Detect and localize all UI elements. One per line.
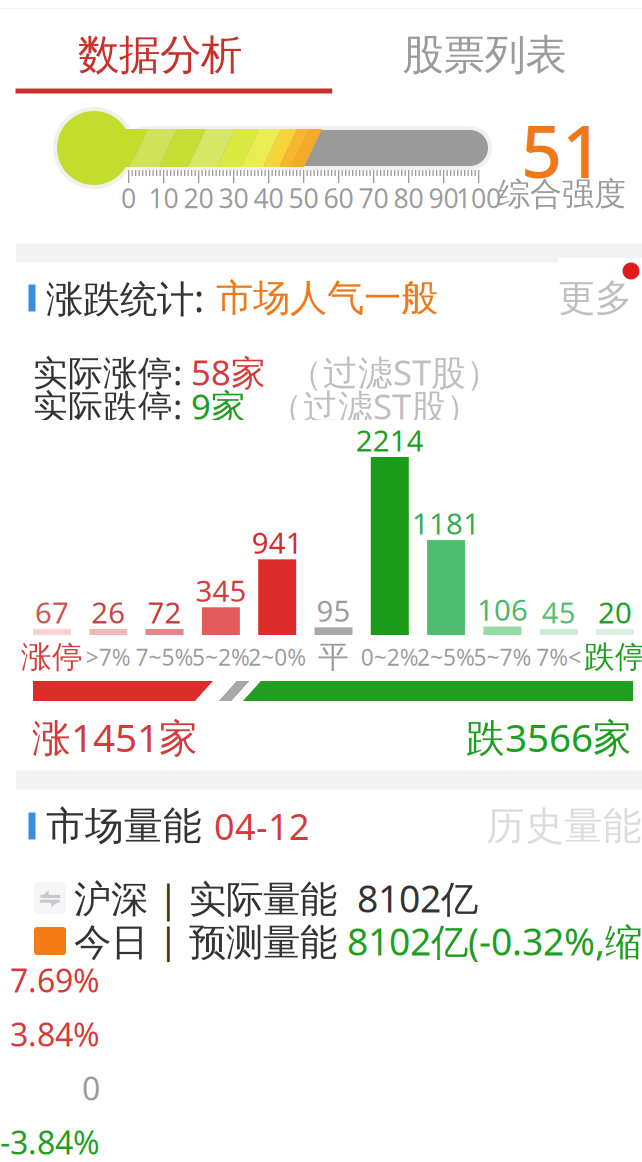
button[interactable]: 数据分析	[0, 9, 333, 95]
staticText: 20	[183, 180, 213, 216]
staticText: 45	[542, 592, 576, 631]
staticText: 2214	[356, 420, 424, 459]
staticText: 平	[318, 638, 349, 676]
staticText: 26	[91, 592, 125, 631]
staticText: 10	[148, 180, 178, 216]
staticText: 2~5%	[417, 642, 475, 672]
staticText: 历史量能	[486, 802, 642, 850]
staticText: 0	[121, 180, 136, 216]
button[interactable]: 更多	[558, 258, 642, 332]
staticText: 5~7%	[473, 642, 531, 672]
staticText: -3.84%	[0, 1121, 100, 1162]
staticText: 40	[253, 180, 283, 216]
staticText: 沪深 | 实际量能 8102亿	[74, 873, 478, 923]
staticText: 67	[35, 592, 69, 631]
staticText: >7%	[86, 642, 131, 672]
staticText: 7%<	[536, 642, 581, 672]
staticText: 数据分析	[78, 30, 242, 80]
staticText: 2~0%	[248, 642, 306, 672]
staticText: 涨1451家	[32, 711, 198, 763]
staticText: 股票列表	[402, 30, 566, 80]
staticText: 8102亿(-0.32%,缩量26亿)	[347, 916, 642, 966]
staticText: 51	[521, 102, 603, 198]
staticText: 3.84%	[10, 1013, 100, 1055]
staticText: 综合强度	[498, 174, 626, 214]
button[interactable]: 历史量能	[502, 796, 642, 856]
staticText: 60	[323, 180, 353, 216]
staticText: 跌停	[584, 638, 642, 676]
staticText: 涨跌统计:	[46, 273, 204, 323]
staticText: 58家	[191, 349, 266, 395]
staticText: 95	[316, 591, 350, 630]
staticText: 100	[456, 180, 501, 216]
staticText: （过滤ST股）	[268, 383, 481, 429]
staticText: 70	[358, 180, 388, 216]
staticText: 7.69%	[10, 959, 100, 1001]
staticText: 今日 | 预测量能	[74, 916, 337, 966]
staticText: 106	[477, 590, 528, 629]
staticText: 5~2%	[192, 642, 250, 672]
staticText: 30	[218, 180, 248, 216]
staticText: 7~5%	[136, 642, 194, 672]
staticText: 04-12	[214, 802, 310, 850]
staticText: 实际涨停:	[33, 349, 182, 395]
button[interactable]: 股票列表	[332, 9, 641, 95]
staticText: 跌3566家	[466, 711, 632, 763]
staticText: 20	[598, 592, 632, 631]
staticText: 80	[393, 180, 423, 216]
staticText: 50	[288, 180, 318, 216]
staticText: （过滤ST股）	[288, 349, 501, 395]
staticText: 更多	[558, 275, 632, 321]
staticText: 90	[428, 180, 458, 216]
staticText: 345	[195, 571, 246, 610]
staticText: 1181	[412, 504, 480, 543]
staticText: 涨停	[21, 638, 83, 676]
staticText: 9家	[191, 383, 246, 429]
staticText: 0	[82, 1067, 100, 1109]
staticText: 0~2%	[361, 642, 419, 672]
staticText: 实际跌停:	[33, 383, 182, 429]
staticText: 市场人气一般	[216, 275, 438, 321]
staticText: 72	[148, 592, 182, 631]
staticText: 941	[252, 523, 303, 562]
staticText: 市场量能	[46, 802, 202, 850]
